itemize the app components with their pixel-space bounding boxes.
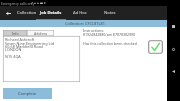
staticText: Info	[12, 31, 19, 36]
button[interactable]: Info	[3, 30, 27, 36]
button[interactable]: Back	[169, 67, 178, 76]
staticText: N15 4QA	[5, 54, 21, 59]
button[interactable]: Has this collection been checked	[147, 39, 163, 54]
staticText: Richard Ashcroft Seven Nine Engineering …	[5, 37, 55, 52]
button[interactable]: Job Details	[37, 6, 65, 20]
staticText: Job Details	[40, 10, 62, 16]
staticText: Collection: CFCL81L81	[65, 21, 106, 26]
button[interactable]: Recents	[169, 22, 178, 31]
button[interactable]: Notes	[96, 6, 124, 20]
button[interactable]: Address	[27, 30, 54, 36]
button[interactable]: Home	[169, 45, 178, 54]
staticText: Collection	[17, 10, 37, 16]
staticText: Instructions: 81924842880/am 878783829R0	[83, 28, 136, 37]
button[interactable]: Collection	[13, 6, 41, 20]
staticText: Emergency calls only	[1, 1, 35, 6]
staticText: Has this collection been checked	[83, 41, 138, 46]
staticText: Address	[34, 31, 48, 36]
button[interactable]: Ad Hoc	[66, 6, 94, 20]
button[interactable]: Complete	[3, 88, 52, 99]
button[interactable]: Back	[0, 6, 16, 20]
staticText: Notes	[104, 10, 116, 16]
staticText: Complete	[18, 91, 37, 96]
staticText: Ad Hoc	[73, 10, 87, 16]
